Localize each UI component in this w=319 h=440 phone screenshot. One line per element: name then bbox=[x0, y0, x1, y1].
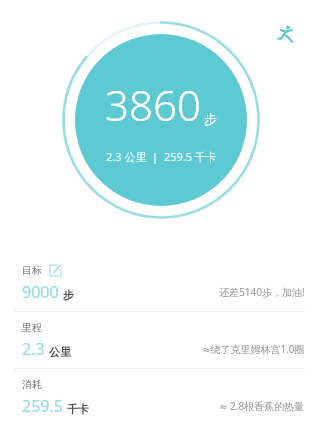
staticText: 步 bbox=[63, 288, 74, 302]
button[interactable]: 3860 bbox=[61, 20, 261, 220]
staticText: 目标 bbox=[22, 264, 42, 277]
staticText: 公里 bbox=[49, 345, 71, 359]
staticText: 9000 bbox=[22, 281, 59, 303]
staticText: 消耗 bbox=[22, 378, 42, 391]
staticText: ≈绕了克里姆林宫1.0圈 bbox=[202, 342, 305, 356]
staticText: 2.3 bbox=[22, 338, 45, 360]
button[interactable]: 消耗 bbox=[0, 369, 319, 425]
button[interactable]: Edit goal bbox=[49, 264, 62, 277]
staticText: 3860 bbox=[105, 76, 201, 133]
button[interactable]: 目标 bbox=[0, 255, 319, 311]
staticText: 步 bbox=[204, 111, 217, 127]
staticText: 千卡 bbox=[67, 402, 89, 416]
staticText: 2.3 公里 | 259.5 千卡 bbox=[106, 149, 217, 164]
staticText: ≈ 2.8根香蕉的热量 bbox=[219, 399, 305, 413]
staticText: 还差5140步，加油! bbox=[219, 285, 305, 299]
button[interactable]: 里程 bbox=[0, 312, 319, 368]
staticText: 259.5 bbox=[22, 395, 63, 417]
button[interactable]: Start workout bbox=[272, 20, 300, 48]
staticText: 里程 bbox=[22, 321, 42, 334]
